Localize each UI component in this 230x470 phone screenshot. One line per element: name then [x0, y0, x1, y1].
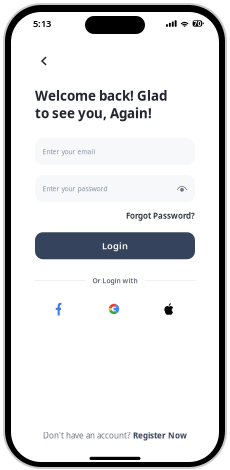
button[interactable]: Continue with Facebook [34, 294, 88, 320]
staticText: Register Now [133, 430, 187, 441]
staticText: Enter your email [42, 147, 95, 156]
staticText: Enter your password [42, 184, 107, 193]
staticText: Forgot Password? [126, 210, 195, 221]
staticText: 70 [193, 19, 201, 28]
staticText: Don't have an account? [43, 430, 130, 441]
staticText: Login [102, 239, 128, 252]
staticText: Or Login with [92, 276, 137, 285]
button[interactable]: Forgot Password? [126, 210, 195, 221]
button[interactable]: Back [32, 56, 50, 74]
staticText: 5:13 [33, 17, 51, 30]
button[interactable]: Continue with Apple [142, 294, 196, 320]
button[interactable]: Continue with Google [88, 294, 142, 320]
button[interactable]: Login [35, 232, 195, 259]
staticText: Welcome back! Glad to see you, Again! [35, 87, 167, 122]
button[interactable]: Don't have an account? [43, 430, 187, 441]
